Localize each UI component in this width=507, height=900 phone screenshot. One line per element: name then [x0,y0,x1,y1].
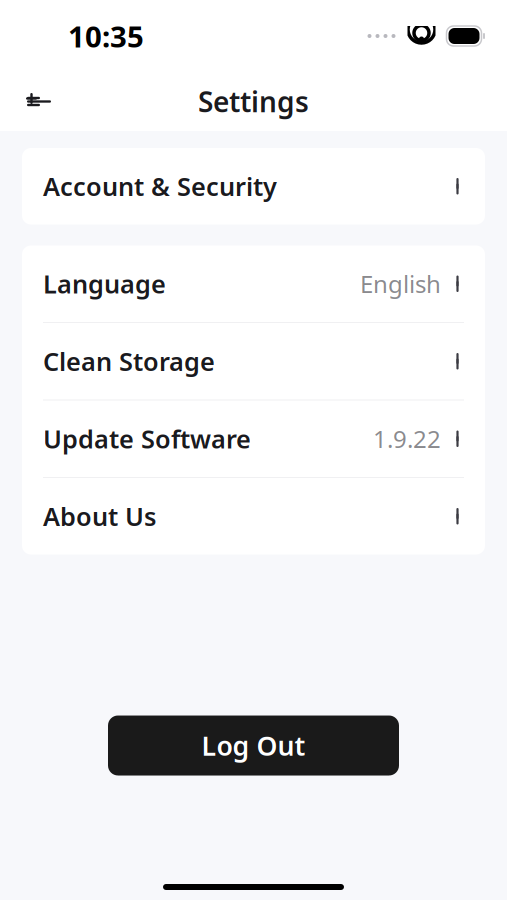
button[interactable]: Log Out [108,715,399,775]
staticText: 10:35 [68,16,144,55]
staticText: Account & Security [43,169,277,203]
staticText: Language [43,267,166,300]
button[interactable]: Clean Storage [22,323,485,399]
button[interactable]: Update Software [22,400,485,477]
button[interactable]: Account & Security [22,148,485,224]
staticText: Clean Storage [43,344,215,378]
staticText: Log Out [201,728,305,763]
staticText: About Us [43,499,156,533]
button[interactable]: Language [22,245,485,322]
button[interactable]: Back [15,77,63,125]
staticText: 1.9.22 [373,423,441,455]
staticText: Settings [198,83,309,120]
staticText: English [360,268,441,300]
staticText: Update Software [43,422,251,455]
button[interactable]: About Us [22,478,485,554]
